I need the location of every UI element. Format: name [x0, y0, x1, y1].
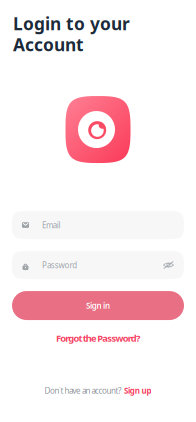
- button[interactable]: Sign in: [12, 291, 184, 320]
- staticText: Forgot the Password?: [56, 332, 140, 344]
- staticText: Password: [42, 260, 77, 270]
- staticText: Don´t have an account?: [44, 385, 121, 396]
- button[interactable]: Forgot the Password?: [56, 332, 140, 344]
- staticText: Login to your Account: [13, 12, 130, 56]
- button[interactable]: Don´t have an account?: [44, 385, 151, 396]
- staticText: Email: [42, 220, 61, 230]
- button[interactable]: Show password: [163, 261, 174, 269]
- staticText: Sign up: [124, 385, 151, 396]
- staticText: Sign in: [86, 300, 110, 311]
